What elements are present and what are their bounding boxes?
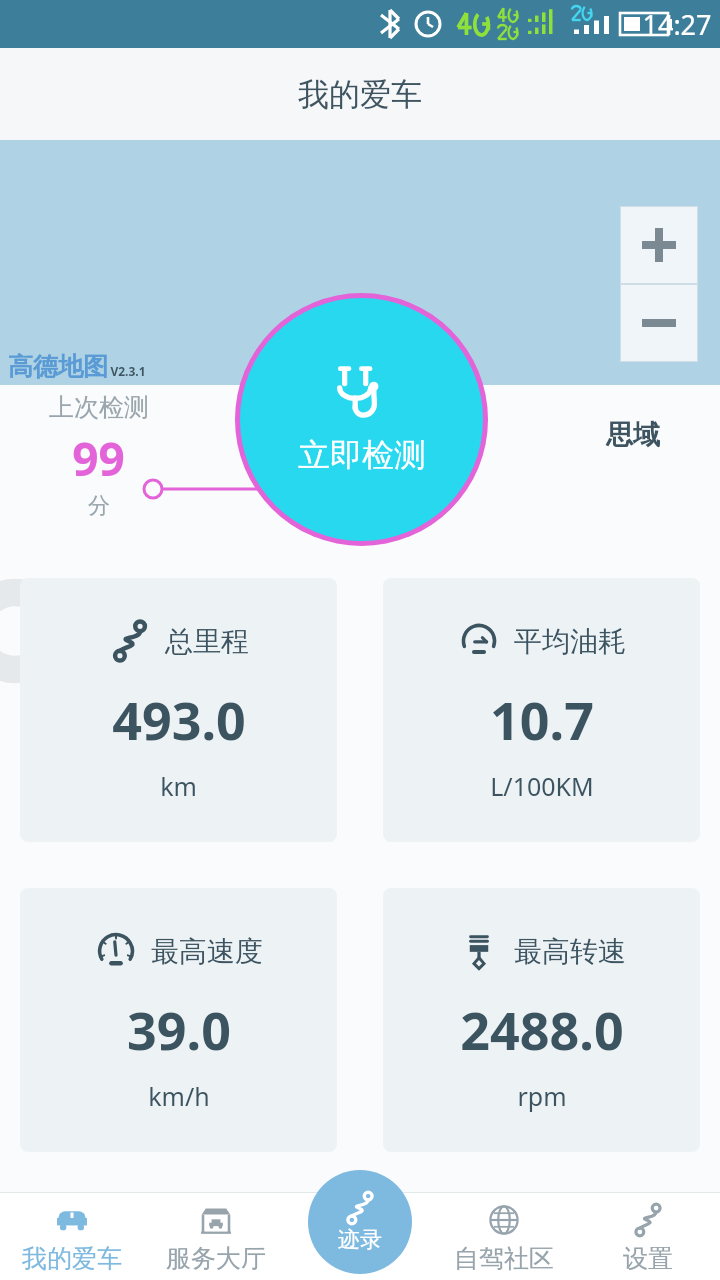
button[interactable]: 我的爱车 bbox=[0, 1192, 144, 1280]
staticText: km/h bbox=[148, 1079, 210, 1113]
button[interactable]: 最高速度 bbox=[20, 888, 337, 1152]
button[interactable]: 立即检测 bbox=[240, 298, 483, 541]
staticText: km bbox=[160, 769, 197, 803]
staticText: 高德地图 bbox=[8, 351, 108, 382]
staticText: 平均油耗 bbox=[514, 624, 626, 659]
staticText: 设置 bbox=[623, 1243, 673, 1274]
staticText: 493.0 bbox=[112, 684, 246, 755]
staticText: 99 bbox=[72, 427, 125, 490]
staticText: 2488.0 bbox=[460, 994, 624, 1065]
staticText: 自驾社区 bbox=[454, 1243, 554, 1274]
button[interactable]: Zoom out bbox=[620, 284, 698, 362]
staticText: V2.3.1 bbox=[110, 363, 146, 379]
staticText: 服务大厅 bbox=[166, 1243, 266, 1274]
button[interactable]: Zoom in bbox=[620, 206, 698, 284]
button[interactable]: 服务大厅 bbox=[144, 1192, 288, 1280]
staticText: 总里程 bbox=[165, 624, 249, 659]
staticText: 我的爱车 bbox=[22, 1243, 122, 1274]
staticText: 上次检测 bbox=[49, 392, 149, 423]
button[interactable]: 平均油耗 bbox=[383, 578, 700, 842]
button[interactable]: 总里程 bbox=[20, 578, 337, 842]
staticText: 10.7 bbox=[490, 684, 594, 755]
button[interactable]: 设置 bbox=[576, 1192, 720, 1280]
staticText: 14:27 bbox=[642, 6, 712, 43]
staticText: 最高转速 bbox=[514, 934, 626, 969]
button[interactable]: 迹录 bbox=[308, 1170, 412, 1274]
staticText: 思域 bbox=[606, 418, 660, 452]
staticText: 迹录 bbox=[338, 1226, 382, 1254]
button[interactable]: 自驾社区 bbox=[432, 1192, 576, 1280]
button[interactable]: 最高转速 bbox=[383, 888, 700, 1152]
staticText: rpm bbox=[517, 1079, 567, 1113]
staticText: 39.0 bbox=[127, 994, 231, 1065]
staticText: L/100KM bbox=[490, 769, 594, 803]
staticText: 立即检测 bbox=[298, 435, 426, 475]
staticText: 我的爱车 bbox=[298, 75, 422, 114]
staticText: 分 bbox=[88, 492, 110, 520]
staticText: 最高速度 bbox=[151, 934, 263, 969]
